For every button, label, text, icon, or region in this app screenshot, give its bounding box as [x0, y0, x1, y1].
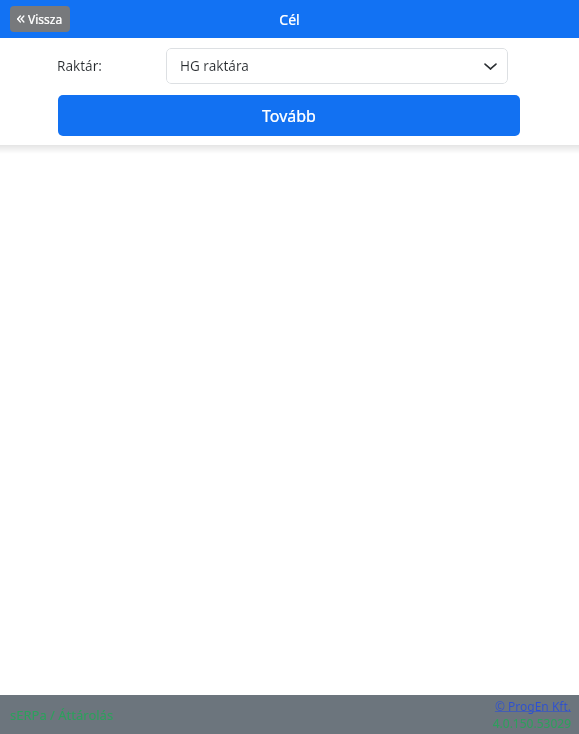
staticText: sERPa / Áttárolás [10, 706, 114, 724]
staticText: Vissza [28, 11, 63, 27]
staticText: HG raktára [180, 57, 249, 75]
button[interactable]: Vissza [10, 6, 70, 32]
staticText: 4.0.150.53029 [492, 715, 571, 731]
button[interactable]: Tovább [58, 95, 520, 136]
button[interactable]: HG raktára [166, 48, 508, 84]
button[interactable]: © ProgEn Kft. [494, 698, 571, 714]
staticText: Raktár: [57, 57, 102, 75]
other: Open dropdown [485, 63, 496, 70]
staticText: Tovább [262, 105, 316, 127]
staticText: Cél [279, 10, 300, 29]
